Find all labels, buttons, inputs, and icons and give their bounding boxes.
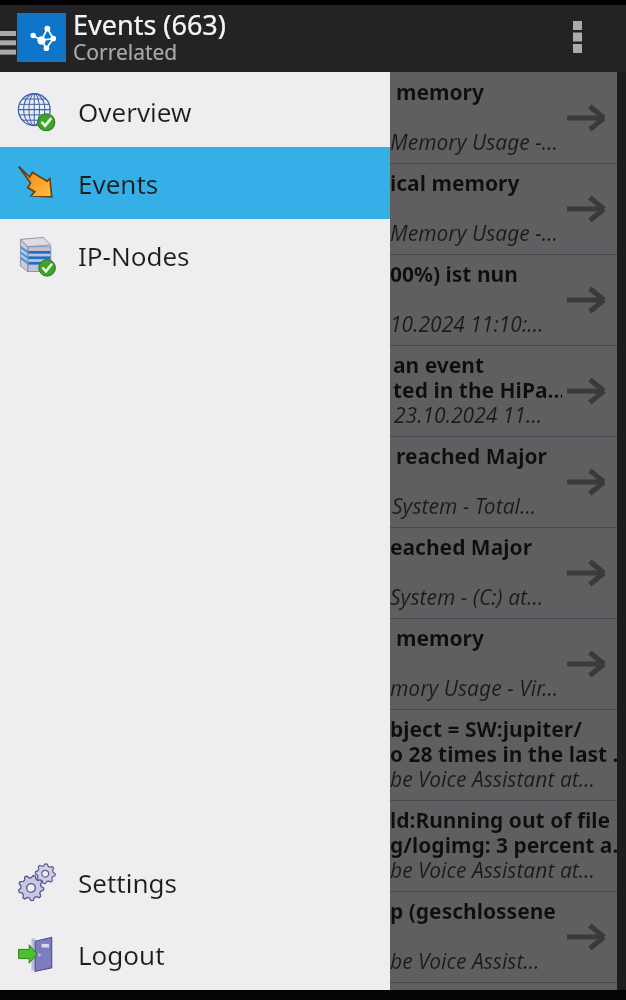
button[interactable]: ical memory (0, 164, 617, 254)
button[interactable]: Settings (0, 846, 390, 918)
button[interactable]: Overview (0, 75, 390, 147)
button[interactable]: Open navigation drawer (0, 5, 15, 72)
staticText: be Voice Assistant at… (390, 765, 595, 794)
staticText: Settings (78, 865, 177, 900)
button[interactable]: memory (0, 73, 617, 163)
button[interactable]: p (geschlossene (0, 892, 617, 982)
staticText: Correlated (73, 38, 178, 67)
staticText: 10.2024 11:10:… (390, 310, 544, 339)
staticText: be Voice Assist… (390, 947, 540, 976)
staticText: Logout (78, 937, 165, 972)
button[interactable]: memory (0, 619, 617, 709)
staticText: eached Major (390, 533, 533, 562)
button[interactable]: 00%) ist nun (0, 255, 617, 345)
staticText: Memory Usage -… (390, 219, 558, 248)
button[interactable]: IP-Nodes (0, 219, 390, 291)
staticText: Overview (78, 94, 192, 129)
button[interactable]: Events (0, 147, 390, 219)
staticText: Memory Usage -… (390, 128, 558, 157)
button[interactable]: eached Major (0, 528, 617, 618)
staticText: p (geschlossene (390, 897, 556, 926)
staticText: System - (C:) at… (390, 583, 544, 612)
staticText: memory (396, 78, 484, 107)
button[interactable]: More options (549, 5, 605, 72)
button[interactable]: reached Major (0, 437, 617, 527)
staticText: memory (396, 624, 484, 653)
staticText: Events (663) (73, 6, 226, 43)
staticText: 00%) ist nun (390, 260, 518, 289)
staticText: System - Total… (392, 492, 537, 521)
staticText: bject = SW:jupiter/ o 28 times in the la… (390, 715, 617, 768)
staticText: IP-Nodes (78, 238, 190, 273)
staticText: 23.10.2024 11… (394, 401, 543, 430)
staticText: ical memory (390, 169, 520, 198)
staticText: be Voice Assistant at… (390, 856, 595, 885)
staticText: reached Major (396, 442, 547, 471)
button[interactable]: Logout (0, 918, 390, 990)
button[interactable]: bject = SW:jupiter/ o 28 times in the la… (0, 710, 617, 800)
staticText: Events (78, 166, 159, 201)
staticText: ld:Running out of file g/logimg: 3 perce… (390, 806, 617, 859)
button[interactable]: ld:Running out of file g/logimg: 3 perce… (0, 801, 617, 891)
button[interactable]: an event ted in the HiPa… (0, 346, 617, 436)
staticText: an event ted in the HiPa… (393, 351, 562, 404)
staticText: mory Usage - Vir… (390, 674, 559, 703)
